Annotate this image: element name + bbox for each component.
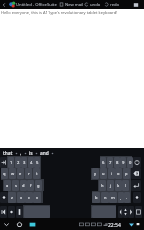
staticText: p: [125, 171, 128, 176]
button[interactable]: .: [124, 192, 130, 203]
staticText: that: [3, 150, 13, 157]
staticText: 7: [109, 160, 112, 166]
button[interactable]: 5: [34, 157, 40, 168]
button[interactable]: b: [92, 192, 100, 203]
button[interactable]: m: [109, 192, 117, 203]
staticText: h: [101, 183, 104, 188]
staticText: t: [36, 171, 38, 176]
button[interactable]: ,: [18, 150, 24, 157]
staticText: .: [126, 195, 128, 201]
button[interactable]: Layout: [16, 206, 23, 218]
button[interactable]: g: [35, 180, 42, 191]
staticText: b: [95, 195, 98, 200]
button[interactable]: Recent apps: [28, 220, 37, 229]
button[interactable]: w: [9, 168, 16, 179]
button[interactable]: t: [33, 168, 40, 179]
staticText: k: [117, 183, 120, 188]
button[interactable]: r: [25, 168, 32, 179]
staticText: u: [102, 171, 105, 176]
button[interactable]: s: [12, 180, 19, 191]
button[interactable]: 6: [100, 157, 106, 168]
staticText: 9: [122, 160, 125, 166]
button[interactable]: e: [17, 168, 24, 179]
staticText: 5: [36, 160, 39, 166]
button[interactable]: 3: [21, 157, 27, 168]
button[interactable]: that: [1, 150, 15, 157]
staticText: v: [36, 195, 39, 200]
button[interactable]: u: [100, 168, 107, 179]
button[interactable]: 8: [114, 157, 120, 168]
staticText: ,: [20, 150, 22, 157]
button[interactable]: Shift: [133, 192, 141, 203]
button[interactable]: Back: [2, 220, 11, 229]
button[interactable]: c: [25, 192, 33, 203]
button[interactable]: 2: [15, 157, 21, 168]
button[interactable]: Shift: [0, 192, 8, 203]
button[interactable]: Home: [15, 220, 24, 229]
staticText: i: [111, 171, 113, 176]
button[interactable]: Up/Down: [123, 206, 128, 218]
button[interactable]: is: [27, 150, 35, 157]
staticText: 0: [129, 160, 132, 166]
button[interactable]: redo: [104, 1, 124, 8]
button[interactable]: Left: [118, 206, 123, 218]
staticText: s: [15, 183, 17, 188]
button[interactable]: 9: [120, 157, 126, 168]
button[interactable]: and: [38, 150, 51, 157]
button[interactable]: f: [27, 180, 34, 191]
button[interactable]: q: [1, 168, 8, 179]
button[interactable]: k: [115, 180, 122, 191]
staticText: r: [28, 171, 30, 176]
button[interactable]: Back: [0, 1, 8, 9]
button[interactable]: Settings: [8, 206, 15, 218]
button[interactable]: h: [99, 180, 106, 191]
staticText: ,: [120, 195, 122, 201]
button[interactable]: d: [20, 180, 27, 191]
button[interactable]: l: [122, 180, 129, 191]
button[interactable]: i: [108, 168, 115, 179]
staticText: 2: [17, 160, 20, 166]
button[interactable]: Emoji: [133, 157, 141, 168]
button[interactable]: n: [101, 192, 109, 203]
button[interactable]: Menu: [132, 1, 140, 9]
staticText: j: [110, 183, 112, 188]
staticText: l: [125, 183, 127, 188]
button[interactable]: x: [17, 192, 25, 203]
staticText: 1: [10, 160, 13, 166]
button[interactable]: Backspace: [131, 168, 141, 179]
staticText: o: [117, 171, 120, 176]
button[interactable]: 1: [8, 157, 14, 168]
button[interactable]: Tab: [0, 157, 7, 168]
staticText: m: [111, 195, 115, 200]
staticText: z: [11, 195, 13, 200]
staticText: a: [6, 183, 9, 188]
button[interactable]: 4: [28, 157, 34, 168]
button[interactable]: New mail: [59, 1, 81, 8]
staticText: 22:54: [108, 222, 121, 229]
button[interactable]: 0: [127, 157, 133, 168]
button[interactable]: Symbols: [0, 206, 7, 218]
staticText: g: [37, 183, 40, 188]
staticText: y: [94, 171, 97, 176]
staticText: 8: [116, 160, 119, 166]
button[interactable]: v: [33, 192, 41, 203]
button[interactable]: 7: [107, 157, 113, 168]
button[interactable]: undo: [84, 1, 104, 8]
staticText: New mail: [65, 2, 84, 8]
button[interactable]: z: [8, 192, 16, 203]
button[interactable]: ,: [118, 192, 124, 203]
staticText: 3: [23, 160, 26, 166]
staticText: e: [19, 171, 22, 176]
button[interactable]: p: [123, 168, 130, 179]
button[interactable]: o: [115, 168, 122, 179]
button[interactable]: Right: [128, 206, 134, 218]
button[interactable]: j: [107, 180, 114, 191]
button[interactable]: Enter: [131, 180, 141, 191]
staticText: x: [20, 195, 23, 200]
button[interactable]: y: [92, 168, 99, 179]
button[interactable]: Untitled - OfficeSuite: [16, 2, 57, 8]
button[interactable]: a: [4, 180, 11, 191]
button[interactable]: Keyboard: [135, 206, 142, 218]
